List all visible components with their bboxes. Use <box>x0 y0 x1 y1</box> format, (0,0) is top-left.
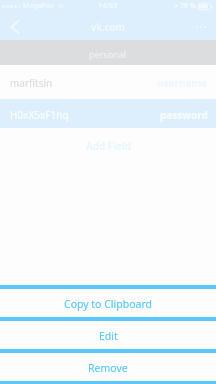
staticText: H0xX5xF1hq <box>10 108 69 122</box>
button[interactable]: Edit <box>0 321 216 349</box>
staticText: Copy to Clipboard <box>64 297 152 311</box>
staticText: MegaFon <box>23 1 55 11</box>
staticText: 76 % <box>180 1 196 11</box>
staticText: 14:53 <box>98 0 118 10</box>
staticText: username <box>157 76 208 90</box>
button[interactable]: Back <box>0 14 30 40</box>
button[interactable]: Copy to Clipboard <box>0 289 216 317</box>
button[interactable]: Remove <box>0 353 216 381</box>
staticText: password <box>160 108 208 122</box>
button[interactable]: H0xX5xF1hq <box>0 99 216 128</box>
staticText: personal <box>89 48 127 60</box>
staticText: Edit <box>99 329 118 343</box>
staticText: Remove <box>88 361 128 375</box>
staticText: Add Field <box>86 139 131 153</box>
staticText: vk.com <box>91 20 126 34</box>
staticText: marfitsin <box>10 76 53 90</box>
button[interactable]: marfitsin <box>0 65 216 99</box>
